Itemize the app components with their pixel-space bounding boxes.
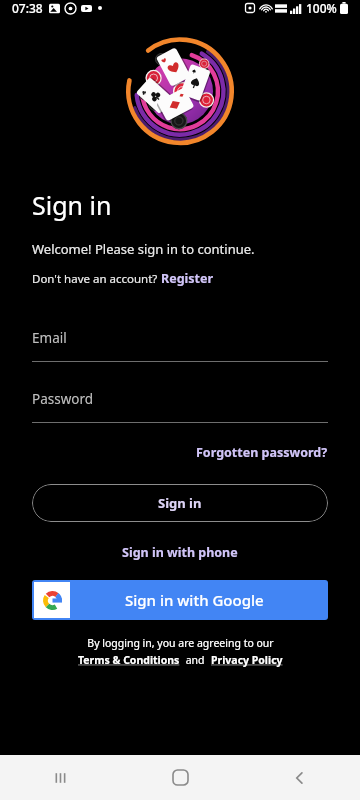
staticText: and (183, 653, 211, 667)
staticText: 100% (306, 0, 337, 16)
staticText: By logging in, you are agreeing to our (87, 636, 274, 650)
button[interactable]: Email (32, 329, 328, 362)
button[interactable]: Sign in with Google (32, 580, 328, 620)
staticText: Welcome! Please sign in to continue. (32, 240, 255, 258)
button[interactable]: Sign in (32, 484, 328, 522)
button[interactable]: Back (240, 755, 360, 800)
button[interactable]: Sign in with phone (122, 541, 238, 564)
staticText: Don't have an account? (32, 271, 161, 287)
staticText: Sign in with Google (125, 590, 264, 610)
button[interactable]: Privacy Policy (211, 653, 283, 667)
staticText: 07:38 (12, 0, 43, 16)
button[interactable]: Password (32, 390, 328, 423)
button[interactable]: Forgotten password? (196, 441, 328, 464)
button[interactable]: Recent apps (0, 755, 120, 800)
button[interactable]: Home (120, 755, 240, 800)
staticText: Email (32, 329, 67, 347)
staticText: Sign in with phone (122, 544, 238, 561)
button[interactable]: Register (161, 270, 214, 287)
staticText: Register (161, 270, 214, 287)
staticText: Forgotten password? (196, 444, 328, 461)
staticText: Terms & Conditions (78, 653, 183, 667)
button[interactable]: Terms & Conditions (78, 653, 183, 667)
staticText: Password (32, 390, 94, 408)
staticText: Sign in (32, 188, 112, 222)
staticText: Privacy Policy (211, 653, 283, 667)
staticText: Sign in (158, 494, 202, 512)
